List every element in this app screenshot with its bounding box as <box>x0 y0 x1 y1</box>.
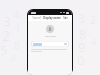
staticText: Cancel <box>32 16 41 20</box>
button[interactable] <box>31 41 69 47</box>
staticText: Edit photo <box>45 35 56 38</box>
button[interactable]: Cancel <box>31 15 42 21</box>
button[interactable]: Change photo <box>46 25 54 33</box>
staticText: Display name <box>43 16 61 20</box>
staticText: Save <box>63 16 68 20</box>
button[interactable]: Save <box>62 15 69 21</box>
